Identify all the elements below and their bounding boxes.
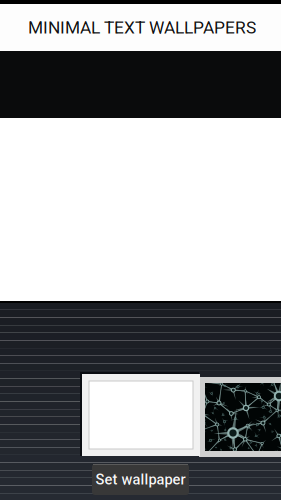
staticText: MINIMAL TEXT WALLPAPERS [28,17,256,38]
staticText: Set wallpaper [95,471,185,488]
button[interactable]: Set wallpaper [92,464,189,495]
button[interactable]: Minimal text wallpaper, selected [82,374,200,456]
button[interactable]: Neurons wallpaper [199,377,281,457]
